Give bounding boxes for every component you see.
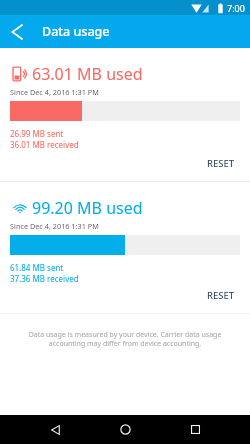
staticText: Since Dec 4, 2016 1:31 PM — [10, 221, 99, 231]
button[interactable]: RESET — [202, 286, 240, 305]
staticText: 7:00 — [227, 2, 245, 14]
staticText: 26.99 MB sent — [10, 128, 64, 139]
staticText: RESET — [207, 289, 235, 302]
staticText: Data usage is measured by your device. C… — [26, 330, 224, 348]
button[interactable]: Home — [105, 415, 145, 444]
button[interactable]: Back — [35, 415, 75, 444]
staticText: 36.01 MB received — [10, 139, 79, 150]
staticText: 61.84 MB sent — [10, 262, 64, 273]
button[interactable]: Recent apps — [175, 415, 215, 444]
staticText: Data usage — [42, 23, 110, 40]
button[interactable]: Navigate up — [0, 15, 34, 48]
staticText: 37.36 MB received — [10, 273, 79, 284]
button[interactable]: RESET — [202, 154, 240, 173]
staticText: 99.20 MB used — [32, 197, 143, 219]
staticText: Since Dec 4, 2016 1:31 PM — [10, 87, 99, 97]
staticText: RESET — [207, 157, 235, 170]
staticText: 63.01 MB used — [32, 63, 143, 85]
